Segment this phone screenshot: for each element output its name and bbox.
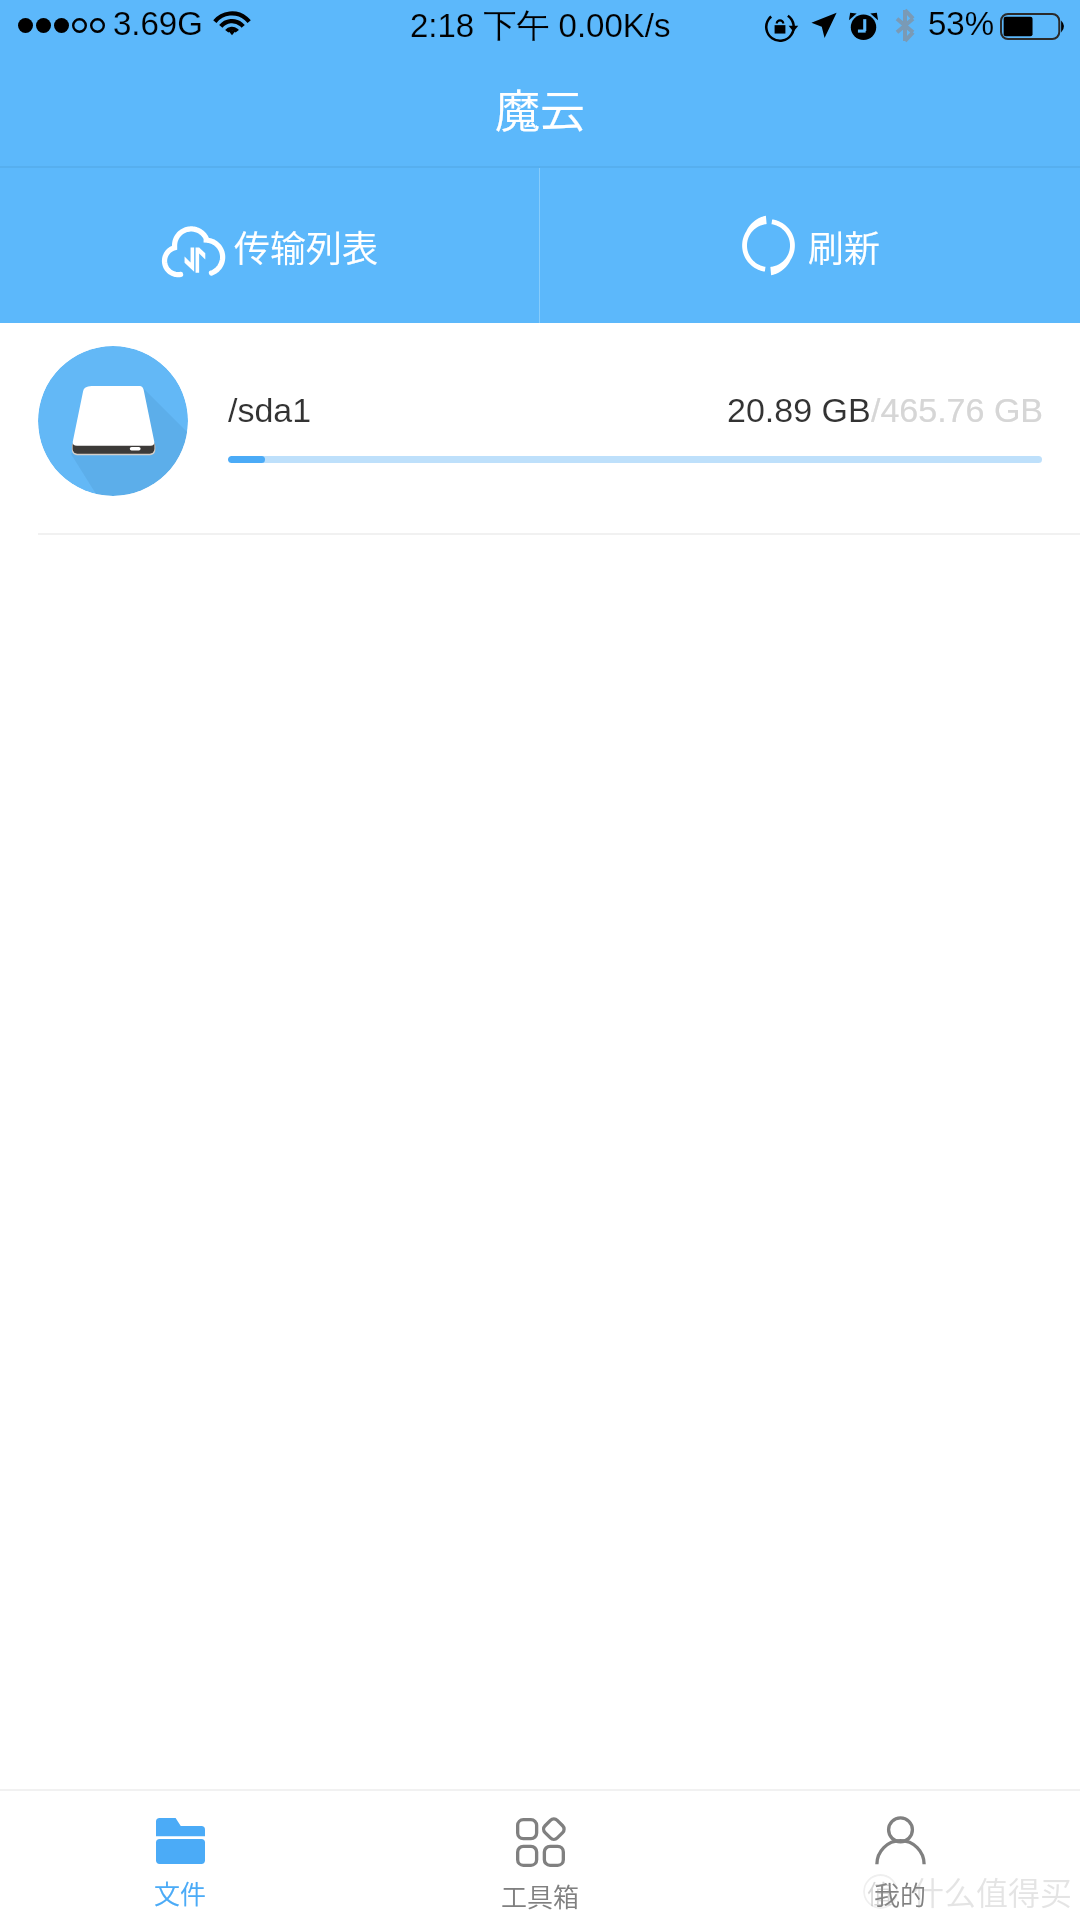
staticText: 魔云 <box>495 76 586 141</box>
staticText: 我的 <box>874 1875 927 1913</box>
staticText: /sda1 <box>228 391 312 429</box>
button[interactable]: Toolbox <box>360 1791 720 1920</box>
button[interactable]: 刷新 <box>540 168 1080 323</box>
button[interactable]: 传输列表 <box>0 168 539 323</box>
staticText: 20.89 GB <box>727 391 871 429</box>
button[interactable]: Profile <box>720 1791 1080 1920</box>
staticText: 53% <box>928 5 995 42</box>
staticText: 刷新 <box>808 220 881 272</box>
button[interactable]: /sda1 <box>0 323 1080 533</box>
staticText: 2:18 下午 0.00K/s <box>410 5 671 47</box>
staticText: 值 <box>867 1874 894 1909</box>
staticText: 文件 <box>154 1874 207 1912</box>
staticText: 3.69G <box>113 5 203 42</box>
staticText: 传输列表 <box>234 220 379 272</box>
staticText: 什么值得买 <box>912 1868 1073 1914</box>
staticText: 工具箱 <box>501 1877 580 1915</box>
staticText: /465.76 GB <box>871 391 1044 429</box>
button[interactable]: Files <box>0 1791 360 1920</box>
